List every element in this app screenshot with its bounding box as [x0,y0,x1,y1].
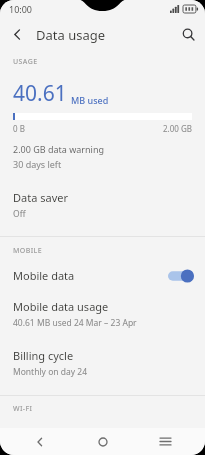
staticText: 40.61 MB used 24 Mar – 23 Apr [13,317,137,329]
button[interactable]: Mobile data [0,266,205,285]
staticText: USAGE [13,57,38,67]
staticText: MOBILE [13,246,43,256]
staticText: 30 days left [13,158,62,170]
button[interactable]: Mobile data usage [0,297,205,331]
staticText: Billing cycle [13,348,74,363]
staticText: 10:00 [9,3,33,15]
button[interactable]: Billing cycle [0,346,205,380]
staticText: Monthly on day 24 [13,366,88,378]
staticText: 40.61 [13,79,67,108]
staticText: 0 B [13,123,25,134]
other: Mobile data toggle [168,269,194,283]
button[interactable]: Recent apps [142,428,188,455]
staticText: Mobile data usage [13,299,109,314]
staticText: Off [13,208,26,220]
button[interactable]: Home [80,428,126,455]
staticText: MB used [71,94,109,106]
staticText: Data saver [13,190,68,205]
button[interactable]: Data saver [0,188,205,222]
button[interactable]: Search [171,18,205,51]
staticText: 2.00 GB [163,123,192,134]
staticText: 2.00 GB data warning [13,143,104,155]
staticText: Data usage [36,26,106,44]
staticText: Mobile data [13,268,75,283]
button[interactable]: Back [17,428,63,455]
button[interactable]: Back [0,18,34,51]
staticText: WI-FI [13,404,33,414]
